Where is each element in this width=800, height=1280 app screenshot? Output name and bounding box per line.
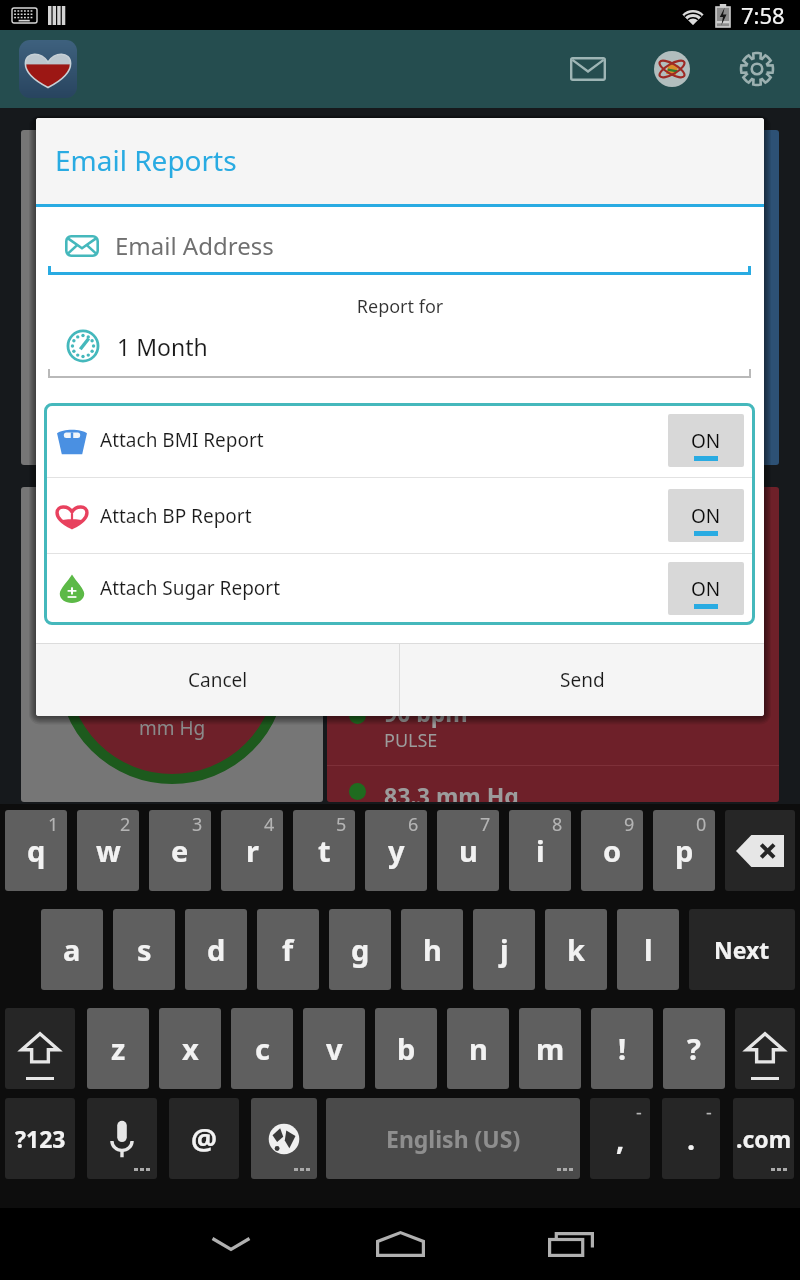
button[interactable]: u <box>437 810 499 891</box>
staticText: ‐ <box>636 1100 642 1125</box>
staticText: Attach Sugar Report <box>100 575 281 601</box>
staticText: ?123 <box>15 1123 66 1154</box>
other: Shift <box>21 1030 59 1068</box>
button[interactable]: Shift <box>735 1008 795 1089</box>
button[interactable]: p <box>653 810 715 891</box>
button[interactable]: t <box>293 810 355 891</box>
staticText: a <box>63 930 81 969</box>
button[interactable]: Home <box>355 1208 445 1280</box>
staticText: f <box>282 930 294 969</box>
button[interactable]: s <box>113 909 175 990</box>
button[interactable]: f <box>257 909 319 990</box>
button[interactable]: Send <box>400 644 764 716</box>
button[interactable]: Next <box>689 909 795 990</box>
button[interactable]: Voice input <box>87 1098 157 1179</box>
staticText: l <box>644 930 653 969</box>
button[interactable]: j <box>473 909 535 990</box>
staticText: ‐ <box>706 1100 712 1125</box>
button[interactable]: v <box>303 1008 365 1089</box>
staticText: n <box>469 1029 488 1068</box>
staticText: w <box>96 831 121 870</box>
button[interactable]: g <box>329 909 391 990</box>
staticText: k <box>567 930 585 969</box>
staticText: b <box>397 1029 416 1068</box>
button[interactable]: Email reports <box>556 30 620 108</box>
other: Change language <box>267 1122 301 1156</box>
staticText: r <box>246 831 259 870</box>
staticText: 6 <box>408 812 419 837</box>
button[interactable]: b <box>375 1008 437 1089</box>
button[interactable]: n <box>447 1008 509 1089</box>
button[interactable]: ?123 <box>5 1098 75 1179</box>
staticText: j <box>500 930 509 969</box>
button[interactable]: ? <box>663 1008 725 1089</box>
button[interactable]: d <box>185 909 247 990</box>
staticText: o <box>603 831 622 870</box>
staticText: PULSE <box>384 728 438 753</box>
button[interactable]: Backspace <box>725 810 795 891</box>
staticText: e <box>171 831 189 870</box>
staticText: z <box>111 1029 126 1068</box>
staticText: Attach BMI Report <box>100 427 264 453</box>
staticText: ON <box>691 503 721 529</box>
staticText: ON <box>691 428 721 454</box>
staticText: y <box>388 831 405 870</box>
staticText: English (US) <box>386 1123 521 1154</box>
staticText: 9 <box>624 812 635 837</box>
button[interactable]: Attach BP Report <box>44 478 755 553</box>
button[interactable]: e <box>149 810 211 891</box>
staticText: 90 bpm <box>384 697 468 728</box>
staticText: Cancel <box>188 667 248 693</box>
button[interactable]: Back <box>186 1208 276 1280</box>
staticText: Report for <box>36 294 764 319</box>
button[interactable]: l <box>617 909 679 990</box>
button[interactable]: z <box>87 1008 149 1089</box>
staticText: ? <box>687 1029 701 1068</box>
staticText: ! <box>618 1029 627 1068</box>
button[interactable]: o <box>581 810 643 891</box>
staticText: 2 <box>120 812 131 837</box>
staticText: c <box>255 1029 270 1068</box>
button[interactable]: a <box>41 909 103 990</box>
button[interactable]: Change language <box>251 1098 317 1179</box>
button[interactable]: Settings <box>725 30 789 108</box>
staticText: 7:58 <box>741 0 785 30</box>
staticText: i <box>536 831 545 870</box>
button[interactable]: Shift <box>5 1008 75 1089</box>
staticText: v <box>326 1029 343 1068</box>
button[interactable]: h <box>401 909 463 990</box>
button[interactable]: ON <box>668 489 744 542</box>
staticText: t <box>318 831 331 870</box>
button[interactable]: Attach Sugar Report <box>44 554 755 622</box>
button[interactable]: q <box>5 810 67 891</box>
button[interactable]: Recent apps <box>526 1208 616 1280</box>
button[interactable]: Attach BMI Report <box>44 403 755 477</box>
button[interactable]: . <box>662 1098 720 1179</box>
staticText: 1 Month <box>117 331 208 362</box>
button[interactable]: w <box>77 810 139 891</box>
button[interactable]: Cancel <box>36 644 399 716</box>
button[interactable]: .com <box>733 1098 794 1179</box>
button[interactable]: i <box>509 810 571 891</box>
button[interactable]: k <box>545 909 607 990</box>
staticText: 83.3 mm Hg <box>384 780 519 802</box>
button[interactable]: @ <box>169 1098 239 1179</box>
staticText: mm Hg <box>139 715 206 741</box>
button[interactable]: c <box>231 1008 293 1089</box>
button[interactable]: r <box>221 810 283 891</box>
staticText: s <box>137 930 152 969</box>
staticText: 5 <box>336 812 347 837</box>
staticText: 7 <box>480 812 491 837</box>
button[interactable]: English (US) <box>326 1098 580 1179</box>
button[interactable]: , <box>590 1098 650 1179</box>
button[interactable]: Health index <box>640 30 704 108</box>
button[interactable]: x <box>159 1008 221 1089</box>
button[interactable]: ! <box>591 1008 653 1089</box>
button[interactable]: y <box>365 810 427 891</box>
button[interactable]: ON <box>668 414 744 467</box>
button[interactable]: m <box>519 1008 581 1089</box>
staticText: m <box>536 1029 565 1068</box>
button[interactable]: App logo <box>19 40 77 98</box>
button[interactable]: ON <box>668 562 744 615</box>
other: Voice input <box>110 1120 134 1158</box>
